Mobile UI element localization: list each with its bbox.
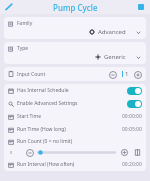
staticText: 00:05:00: [122, 126, 142, 133]
button[interactable]: Target: [120, 148, 129, 157]
staticText: 00:20:00: [122, 161, 142, 168]
staticText: 0: [10, 150, 13, 155]
button[interactable]: Start Time: [4, 110, 146, 123]
button[interactable]: Advanced: [4, 28, 141, 36]
staticText: Has Internal Schedule: [17, 87, 69, 94]
staticText: Enable Advanced Settings: [17, 100, 78, 107]
staticText: Run Time (How long): [17, 126, 66, 133]
staticText: Input Count: [17, 71, 46, 78]
staticText: 1: [125, 70, 129, 78]
button[interactable]: Decrease run count: [25, 148, 34, 157]
button[interactable]: Increase: [133, 70, 142, 79]
button[interactable]: Run count slider: [38, 148, 115, 157]
button[interactable]: Enable Advanced Settings: [4, 97, 146, 110]
staticText: Family: [17, 20, 33, 27]
button[interactable]: Keyboard input: [133, 148, 142, 157]
staticText: Pump Cycle: [53, 2, 98, 13]
staticText: Start Time: [17, 113, 42, 120]
staticText: Advanced: [98, 28, 126, 36]
staticText: Run Interval (How often): [17, 161, 75, 168]
button[interactable]: Save: [135, 1, 147, 13]
button[interactable]: Decrease: [108, 70, 117, 79]
staticText: 00:00:00: [122, 113, 142, 120]
button[interactable]: Run Interval (How often): [4, 158, 146, 171]
button[interactable]: Edit: [3, 1, 15, 13]
staticText: Generic: [104, 53, 126, 61]
staticText: Run Count (0 = no limit): [17, 138, 73, 145]
button[interactable]: Has Internal Schedule: [4, 84, 146, 97]
button[interactable]: Generic: [4, 53, 141, 61]
staticText: Type: [17, 45, 29, 52]
button[interactable]: Run Time (How long): [4, 123, 146, 136]
